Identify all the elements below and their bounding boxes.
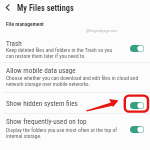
staticText: Show hidden system files <box>6 99 78 107</box>
button[interactable]: Allow mobile data usage <box>0 61 150 91</box>
staticText: Choose whether you can download and edit… <box>6 75 139 87</box>
button[interactable]: Trash <box>0 34 150 61</box>
button[interactable]: Show hidden system files <box>0 92 150 113</box>
staticText: Keep deleted files and folders in the Tr… <box>6 47 113 59</box>
button[interactable]: Show hidden system files toggle, on <box>130 102 144 109</box>
staticText: Allow mobile data usage <box>6 66 76 74</box>
button[interactable]: Navigate back <box>1 1 14 14</box>
button[interactable]: Show frequently-used on top <box>0 113 150 143</box>
staticText: My Files settings <box>17 3 74 13</box>
staticText: Display the folders you use most often a… <box>6 127 118 139</box>
staticText: Show frequently-used on top <box>6 117 87 125</box>
button[interactable]: Trash toggle, on <box>130 45 144 52</box>
staticText: @thegeekpage.com <box>86 28 118 33</box>
button[interactable]: Show frequently-used on top toggle, on <box>130 126 144 133</box>
staticText: File management <box>6 21 44 27</box>
staticText: Trash <box>6 39 22 47</box>
